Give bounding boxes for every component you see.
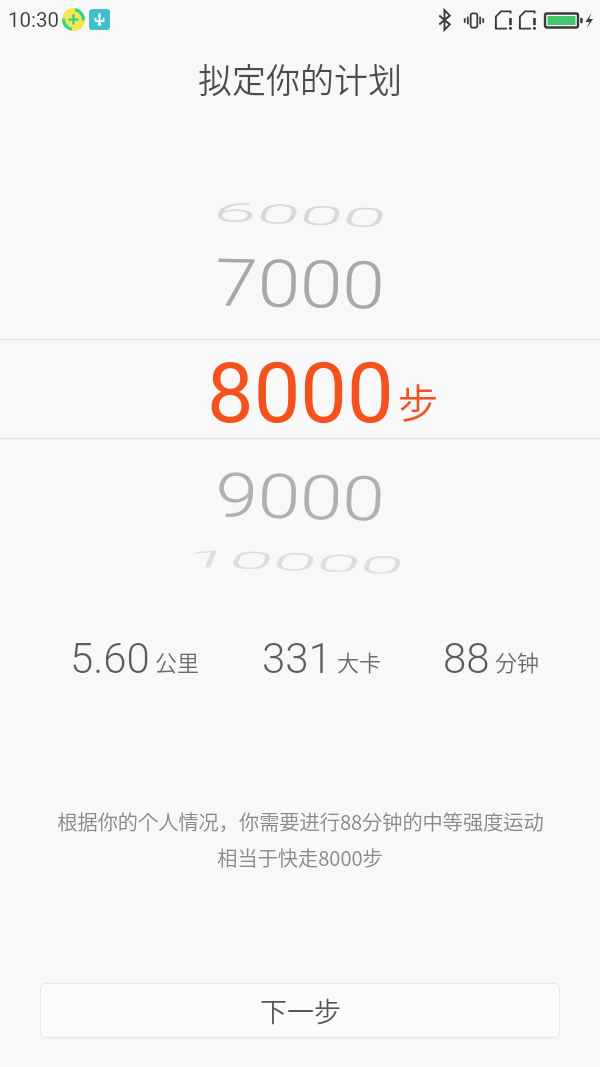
staticText: 下一步 xyxy=(260,991,341,1030)
staticText: 10000 xyxy=(181,545,410,580)
button[interactable]: 9000 xyxy=(24,454,576,540)
button[interactable]: 8000 xyxy=(0,340,600,438)
other: New reward xyxy=(62,8,85,31)
staticText: 拟定你的计划 xyxy=(198,54,402,103)
staticText: 88 xyxy=(443,634,490,680)
button[interactable]: 7000 xyxy=(24,238,576,330)
other: USB connected xyxy=(89,9,110,30)
staticText: 5.60 xyxy=(70,634,150,680)
staticText: 步 xyxy=(398,372,438,430)
staticText: 331 xyxy=(262,634,332,680)
staticText: 9000 xyxy=(214,459,387,535)
staticText: 7000 xyxy=(214,245,386,324)
staticText: 大卡 xyxy=(337,645,382,677)
button[interactable]: 下一步 xyxy=(40,983,560,1038)
staticText: 分钟 xyxy=(495,645,540,677)
button[interactable]: 10000 xyxy=(10,545,580,579)
staticText: 6000 xyxy=(209,197,392,234)
staticText: 8000 xyxy=(207,345,394,442)
staticText: 相当于快走8000步 xyxy=(217,843,383,872)
button[interactable]: 6000 xyxy=(18,197,582,233)
staticText: 10:30 xyxy=(8,8,60,32)
staticText: 根据你的个人情况，你需要进行88分钟的中等强度运动 xyxy=(57,807,544,836)
staticText: 公里 xyxy=(155,645,200,677)
